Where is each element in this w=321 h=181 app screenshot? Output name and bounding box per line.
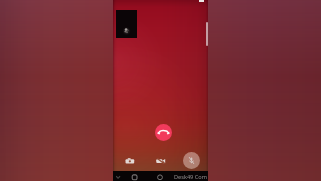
button[interactable]: Mute microphone bbox=[183, 152, 200, 169]
button[interactable]: Self view bbox=[116, 10, 137, 38]
staticText: Desk49 Com bbox=[174, 173, 207, 181]
button[interactable]: Take photo bbox=[123, 154, 137, 168]
button[interactable]: Turn camera off bbox=[154, 154, 168, 168]
button[interactable]: End call bbox=[155, 124, 172, 141]
